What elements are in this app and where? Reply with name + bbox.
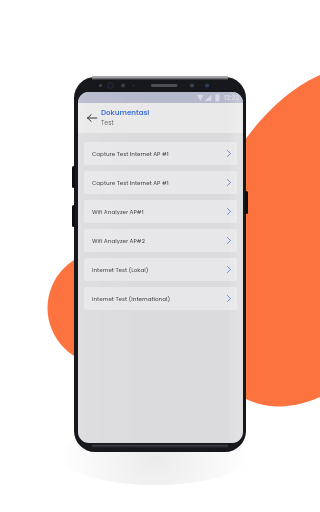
button[interactable]: Internet Test (International) <box>84 287 237 310</box>
button[interactable]: Wifi Analyzer AP#2 <box>84 229 237 252</box>
staticText: Dokumentasi <box>101 108 150 118</box>
staticText: Wifi Analyzer AP#2 <box>92 237 145 245</box>
staticText: Internet Test (Lokal) <box>92 266 149 274</box>
button[interactable]: Wifi Analyzer AP#1 <box>84 200 237 223</box>
staticText: Capture Test Internet AP #1 <box>92 179 169 187</box>
staticText: 12:32 <box>224 93 240 102</box>
button[interactable]: Back <box>84 110 99 126</box>
button[interactable]: Internet Test (Lokal) <box>84 258 237 281</box>
staticText: Internet Test (International) <box>92 295 171 303</box>
staticText: Wifi Analyzer AP#1 <box>92 208 144 216</box>
staticText: Capture Test Internet AP #1 <box>92 150 169 158</box>
button[interactable]: Capture Test Internet AP #1 <box>84 171 237 194</box>
staticText: Test <box>101 118 114 127</box>
button[interactable]: Capture Test Internet AP #1 <box>84 142 237 165</box>
